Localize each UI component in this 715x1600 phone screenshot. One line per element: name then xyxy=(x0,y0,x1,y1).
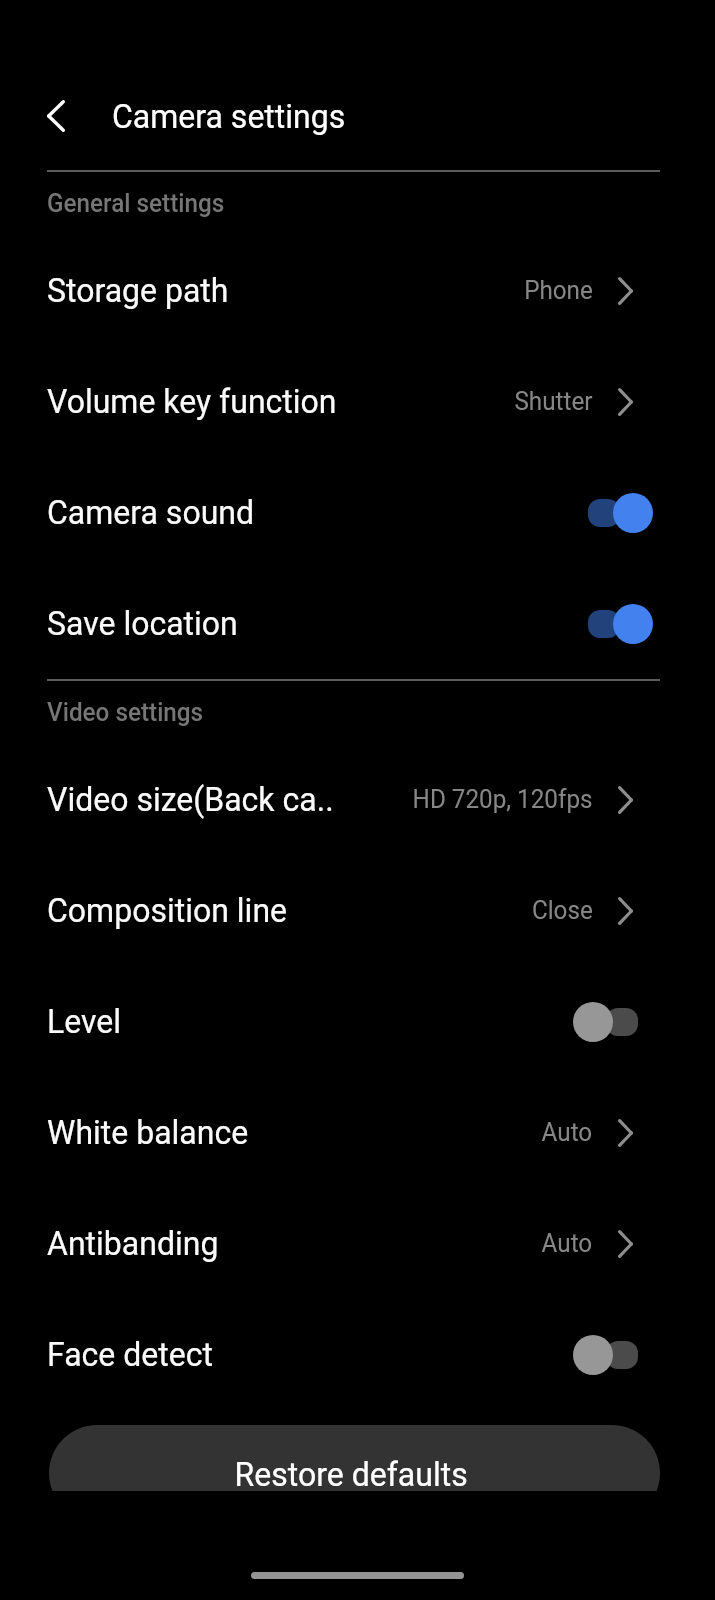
staticText: Volume key function xyxy=(47,382,337,421)
staticText: Restore defaults xyxy=(235,1455,468,1491)
button[interactable]: Video size(Back ca.. xyxy=(0,744,715,855)
staticText: Face detect xyxy=(47,1335,214,1374)
button[interactable]: Antibanding xyxy=(0,1188,715,1299)
button[interactable]: Face detect xyxy=(0,1299,715,1410)
button[interactable]: Back xyxy=(26,86,86,146)
button[interactable]: White balance xyxy=(0,1077,715,1188)
staticText: HD 720p, 120fps xyxy=(413,785,593,814)
button[interactable]: Volume key function xyxy=(0,346,715,457)
button[interactable]: Storage path xyxy=(0,235,715,346)
staticText: Composition line xyxy=(47,891,288,930)
staticText: General settings xyxy=(47,189,224,218)
button[interactable]: Camera sound xyxy=(0,457,715,568)
staticText: Camera settings xyxy=(112,97,346,136)
staticText: Level xyxy=(47,1002,122,1041)
staticText: Antibanding xyxy=(47,1224,219,1263)
staticText: Shutter xyxy=(514,387,593,416)
staticText: Phone xyxy=(524,276,593,305)
staticText: Video size(Back ca.. xyxy=(47,780,334,819)
button[interactable]: Restore defaults xyxy=(0,1425,715,1491)
staticText: Auto xyxy=(542,1118,593,1147)
button[interactable]: Save location xyxy=(0,568,715,679)
button[interactable]: Composition line xyxy=(0,855,715,966)
staticText: Close xyxy=(532,896,593,925)
staticText: Video settings xyxy=(47,698,203,727)
staticText: Storage path xyxy=(47,271,229,310)
staticText: Save location xyxy=(47,604,238,643)
button[interactable]: Level xyxy=(0,966,715,1077)
staticText: White balance xyxy=(47,1113,249,1152)
staticText: Camera sound xyxy=(47,493,255,532)
staticText: Auto xyxy=(542,1229,593,1258)
